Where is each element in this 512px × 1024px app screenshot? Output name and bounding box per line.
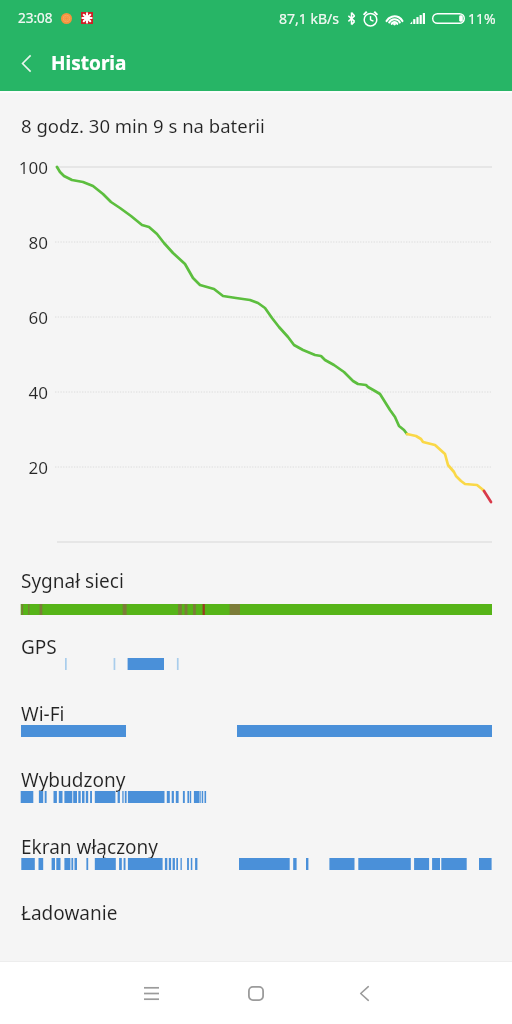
staticText: Wi-Fi (21, 701, 65, 727)
staticText: GPS (21, 634, 57, 660)
button[interactable]: Back (336, 965, 392, 1021)
staticText: Wybudzony (21, 767, 126, 793)
staticText: 87,1 kB/s (279, 9, 339, 28)
staticText: Sygnał sieci (21, 568, 124, 594)
staticText: 80 (0, 231, 48, 254)
button[interactable]: Back (2, 39, 50, 87)
staticText: 8 godz. 30 min 9 s na baterii (21, 113, 265, 138)
button[interactable]: Recent apps (123, 965, 179, 1021)
staticText: 23:08 (18, 9, 53, 27)
staticText: 40 (0, 381, 48, 404)
staticText: 60 (0, 306, 48, 329)
button[interactable]: Home (228, 965, 284, 1021)
staticText: Ekran włączony (21, 834, 158, 860)
staticText: 100 (0, 156, 48, 179)
staticText: 20 (0, 456, 48, 479)
staticText: Ładowanie (21, 900, 118, 926)
staticText: 11% (468, 9, 496, 28)
staticText: Historia (51, 50, 127, 76)
